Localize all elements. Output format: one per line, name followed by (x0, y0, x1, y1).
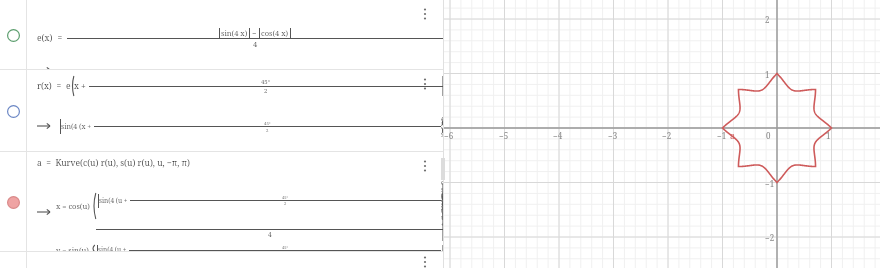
staticText: − (250, 28, 259, 38)
button[interactable]: Toggle visibility (0, 98, 26, 124)
staticText: 45° (261, 78, 271, 86)
staticText: e(x) (37, 32, 53, 44)
staticText: = (53, 32, 67, 44)
staticText: y = sin(u) (56, 245, 91, 252)
staticText: 45° (282, 245, 289, 250)
staticText: e (66, 80, 71, 92)
staticText: −2 (662, 130, 672, 141)
staticText: −1 (765, 178, 775, 189)
staticText: −3 (608, 130, 618, 141)
staticText: −4 (553, 130, 563, 141)
staticText: sin(4 (x + (61, 122, 94, 132)
staticText: 45° (282, 195, 289, 200)
button[interactable]: More options (415, 254, 435, 268)
staticText: x = cos(u) (56, 201, 92, 211)
staticText: sin(4 (u + (98, 245, 129, 252)
staticText: 1 (826, 130, 831, 141)
button[interactable]: Toggle visibility (0, 70, 443, 152)
staticText: sin(4 x) (221, 28, 248, 38)
staticText: 2 (284, 201, 287, 206)
button[interactable]: More options (415, 4, 435, 24)
button[interactable]: Toggle visibility (0, 22, 26, 48)
staticText: 2 (765, 14, 770, 25)
staticText: r(x) (37, 80, 52, 92)
staticText: −1 (717, 130, 727, 141)
button[interactable]: More options (415, 156, 435, 176)
staticText: 4 (268, 230, 272, 239)
staticText: 2 (266, 127, 269, 133)
button[interactable]: Toggle visibility (0, 152, 443, 252)
staticText: a (730, 129, 736, 141)
staticText: cos(4 x) (261, 28, 289, 38)
staticText: a = Kurve(c(u) r(u), s(u) r(u), u, −π, π… (37, 157, 190, 169)
staticText: 4 (253, 39, 258, 49)
staticText: −6 (444, 130, 454, 141)
staticText: = (52, 80, 66, 92)
staticText: 1 (765, 69, 770, 80)
staticText: sin(4 (u + (99, 196, 130, 205)
staticText: 2 (264, 87, 268, 95)
staticText: −2 (765, 232, 775, 243)
button[interactable]: More options (415, 74, 435, 94)
staticText: 45° (264, 120, 271, 126)
button[interactable]: More options (0, 252, 443, 268)
staticText: x + (74, 80, 89, 92)
button[interactable]: Toggle visibility (0, 0, 443, 70)
staticText: 0 (766, 130, 771, 141)
button[interactable]: Toggle visibility (0, 189, 26, 215)
staticText: −5 (499, 130, 509, 141)
